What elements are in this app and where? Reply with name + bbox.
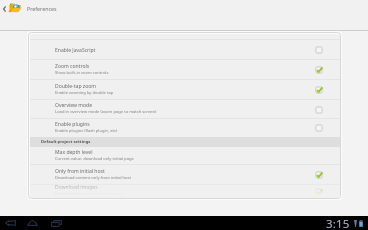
staticText: 3:15: [326, 216, 350, 230]
staticText: Only from initial host: [55, 168, 105, 175]
staticText: Zoom controls: [55, 63, 90, 70]
staticText: Download images: [55, 184, 98, 191]
button[interactable]: Enable plugins: [30, 119, 340, 137]
button[interactable]: Enable JavaScript: [30, 40, 340, 60]
staticText: Load in overview mode (zoom page to matc…: [55, 109, 157, 115]
staticText: Enable plugins: [55, 121, 90, 128]
staticText: Enable zooming by double tap: [55, 90, 114, 96]
button[interactable]: Back: [2, 216, 19, 230]
button[interactable]: Overview mode: [30, 100, 340, 119]
staticText: Enable JavaScript: [55, 47, 96, 54]
button[interactable]: Recent apps: [48, 216, 65, 230]
staticText: Overview mode: [55, 102, 93, 109]
staticText: Double-tap zoom: [55, 83, 97, 90]
button[interactable]: Home: [24, 216, 41, 230]
staticText: Current value: download only initial pag…: [55, 156, 134, 162]
staticText: Preferences: [27, 5, 57, 12]
button[interactable]: Zoom controls: [30, 60, 340, 80]
staticText: Default project settings: [41, 139, 91, 145]
button[interactable]: Double-tap zoom: [30, 80, 340, 100]
staticText: Download content only from initial host: [55, 175, 132, 181]
button[interactable]: Only from initial host: [30, 165, 340, 185]
button[interactable]: Navigate up: [0, 2, 8, 15]
staticText: Enable plugins (flash plugin, etc): [55, 128, 118, 134]
button[interactable]: Max depth level: [30, 147, 340, 165]
button[interactable]: Download images: [30, 185, 340, 198]
staticText: Max depth level: [55, 149, 93, 156]
staticText: Show built-in zoom controls: [55, 70, 109, 76]
